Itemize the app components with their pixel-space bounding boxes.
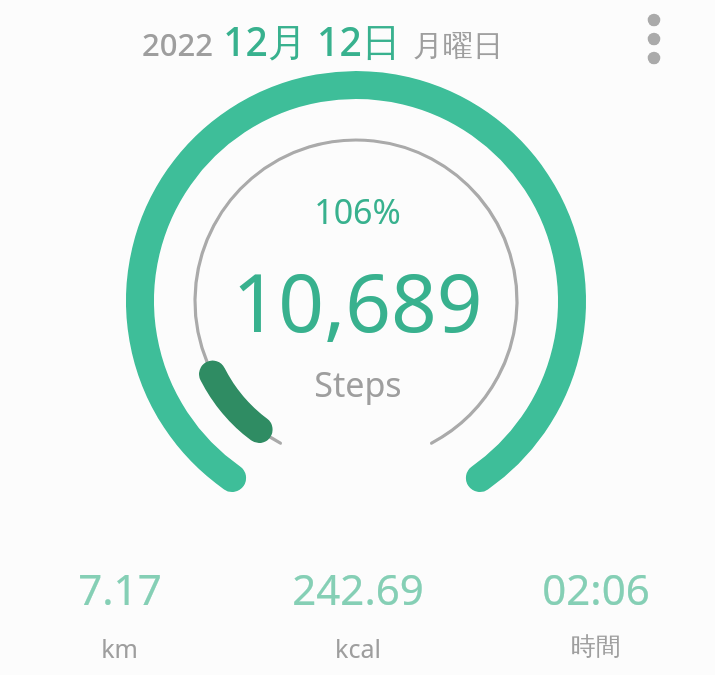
staticText: 02:06 xyxy=(542,560,650,617)
button[interactable]: 02:06 xyxy=(477,560,715,662)
staticText: 242.69 xyxy=(292,560,424,617)
staticText: 2022 xyxy=(142,23,213,65)
staticText: 月曜日 xyxy=(413,27,503,65)
button[interactable]: 2022 xyxy=(142,14,503,67)
staticText: 7.17 xyxy=(78,560,162,617)
staticText: 10,689 xyxy=(232,246,483,355)
staticText: kcal xyxy=(335,631,381,665)
button[interactable]: More options xyxy=(629,0,679,78)
button[interactable]: 106% xyxy=(232,188,483,407)
button[interactable]: 242.69 xyxy=(239,560,477,665)
staticText: km xyxy=(101,631,138,665)
staticText: 106% xyxy=(314,188,401,234)
staticText: Steps xyxy=(314,361,402,407)
staticText: 時間 xyxy=(571,631,621,662)
staticText: 12月 12日 xyxy=(223,14,401,67)
button[interactable]: 7.17 xyxy=(0,560,239,665)
